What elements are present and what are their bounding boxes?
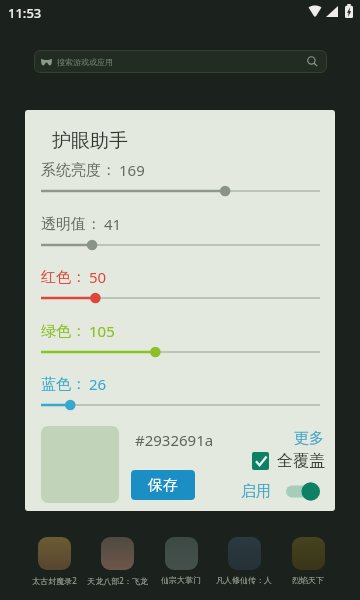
button[interactable]: 搜索游戏或应用 bbox=[34, 50, 327, 73]
button[interactable]: 烈焰天下 bbox=[276, 537, 340, 585]
staticText: 搜索游戏或应用 bbox=[57, 57, 113, 67]
staticText: 烈焰天下 bbox=[292, 575, 324, 585]
staticText: 天龙八部2：飞龙 bbox=[87, 575, 148, 586]
button[interactable]: 更多 bbox=[294, 429, 324, 448]
staticText: 绿色： bbox=[41, 322, 86, 341]
staticText: 105 bbox=[89, 321, 115, 341]
staticText: #2932691a bbox=[135, 430, 214, 450]
staticText: 系统亮度： bbox=[41, 161, 116, 180]
button[interactable]: 仙宗大掌门 bbox=[149, 537, 213, 585]
other: Search bbox=[307, 56, 318, 67]
button[interactable]: 全覆盖 bbox=[252, 451, 325, 471]
button[interactable]: 启用 bbox=[241, 482, 320, 501]
staticText: 全覆盖 bbox=[277, 451, 325, 471]
button[interactable]: 太古封魔录2 bbox=[22, 537, 86, 586]
staticText: 太古封魔录2 bbox=[32, 575, 77, 586]
button[interactable] bbox=[41, 184, 320, 198]
staticText: 红色： bbox=[41, 268, 86, 287]
staticText: 更多 bbox=[294, 429, 324, 448]
staticText: 50 bbox=[89, 267, 107, 287]
button[interactable] bbox=[41, 238, 320, 252]
staticText: 26 bbox=[89, 374, 107, 394]
button[interactable]: 天龙八部2：飞龙 bbox=[85, 537, 149, 586]
staticText: 透明值： bbox=[41, 215, 101, 234]
button[interactable] bbox=[41, 291, 320, 305]
staticText: 护眼助手 bbox=[52, 129, 128, 153]
button[interactable]: 凡人修仙传：人 bbox=[212, 537, 276, 585]
button[interactable] bbox=[41, 345, 320, 359]
button[interactable] bbox=[41, 398, 320, 412]
staticText: 保存 bbox=[148, 476, 178, 495]
button[interactable]: 保存 bbox=[131, 470, 195, 500]
staticText: 启用 bbox=[241, 482, 271, 501]
staticText: 41 bbox=[104, 214, 122, 234]
staticText: 11:53 bbox=[8, 4, 42, 22]
staticText: 仙宗大掌门 bbox=[161, 575, 201, 585]
staticText: 169 bbox=[119, 160, 145, 180]
staticText: 凡人修仙传：人 bbox=[216, 575, 272, 585]
staticText: 蓝色： bbox=[41, 375, 86, 394]
